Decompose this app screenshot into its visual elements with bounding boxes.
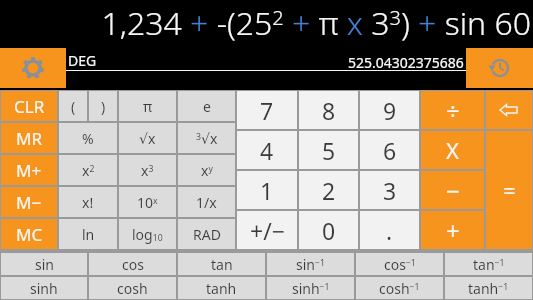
button[interactable]: 6: [359, 130, 420, 170]
staticText: π: [143, 97, 153, 116]
staticText: =: [503, 175, 516, 205]
staticText: ): [101, 97, 106, 116]
staticText: sinh: [30, 279, 58, 298]
button[interactable]: −: [420, 170, 485, 210]
button[interactable]: √x: [118, 122, 177, 154]
button[interactable]: tanh: [177, 276, 266, 300]
button[interactable]: MC: [0, 218, 58, 250]
staticText: 1,234 + -(252 + π x 33) + sin 60: [101, 1, 531, 45]
button[interactable]: π: [118, 90, 177, 122]
button[interactable]: cos−1: [355, 252, 444, 276]
staticText: DEG: [68, 51, 97, 70]
button[interactable]: 9: [359, 90, 420, 130]
staticText: tan−1: [473, 255, 505, 274]
button[interactable]: 3√x: [177, 122, 236, 154]
button[interactable]: x2: [58, 154, 118, 186]
button[interactable]: 1/x: [177, 186, 236, 218]
button[interactable]: sin−1: [266, 252, 355, 276]
staticText: 7: [260, 95, 274, 126]
button[interactable]: (: [58, 90, 88, 122]
staticText: cosh−1: [379, 279, 420, 298]
button[interactable]: [0, 48, 66, 88]
button[interactable]: 4: [236, 130, 298, 170]
staticText: +: [446, 214, 460, 247]
button[interactable]: 1: [236, 170, 298, 210]
button[interactable]: cosh: [88, 276, 177, 300]
button[interactable]: CLR: [0, 90, 58, 122]
staticText: 3: [383, 175, 397, 206]
staticText: cos: [122, 255, 144, 274]
button[interactable]: =: [485, 130, 533, 250]
staticText: ÷: [446, 94, 460, 127]
staticText: 8: [322, 95, 336, 126]
button[interactable]: sinh−1: [266, 276, 355, 300]
button[interactable]: 2: [298, 170, 359, 210]
button[interactable]: e: [177, 90, 236, 122]
button[interactable]: cos: [88, 252, 177, 276]
button[interactable]: 8: [298, 90, 359, 130]
button[interactable]: 10x: [118, 186, 177, 218]
staticText: 5: [322, 135, 336, 166]
button[interactable]: cosh−1: [355, 276, 444, 300]
button[interactable]: ÷: [420, 90, 485, 130]
staticText: 4: [260, 135, 274, 166]
staticText: x!: [82, 193, 94, 212]
staticText: MC: [16, 223, 43, 246]
staticText: tanh−1: [468, 279, 509, 298]
staticText: 10x: [137, 193, 158, 212]
staticText: sin: [35, 255, 54, 274]
button[interactable]: 7: [236, 90, 298, 130]
staticText: 2: [322, 175, 336, 206]
button[interactable]: .: [359, 210, 420, 250]
button[interactable]: tan−1: [444, 252, 533, 276]
staticText: 1: [260, 175, 274, 206]
staticText: M+: [16, 159, 42, 182]
staticText: tanh: [206, 279, 237, 298]
button[interactable]: ): [88, 90, 118, 122]
staticText: (: [71, 97, 76, 116]
button[interactable]: tanh−1: [444, 276, 533, 300]
button[interactable]: RAD: [177, 218, 236, 250]
button[interactable]: 5: [298, 130, 359, 170]
staticText: 9: [383, 95, 397, 126]
staticText: +/−: [250, 215, 285, 246]
button[interactable]: M−: [0, 186, 58, 218]
button[interactable]: sin: [0, 252, 88, 276]
button[interactable]: x3: [118, 154, 177, 186]
button[interactable]: xy: [177, 154, 236, 186]
button[interactable]: X: [420, 130, 485, 170]
button[interactable]: ln: [58, 218, 118, 250]
staticText: log10: [132, 225, 163, 244]
button[interactable]: log10: [118, 218, 177, 250]
staticText: %: [82, 129, 94, 148]
staticText: RAD: [193, 225, 221, 244]
staticText: ln: [82, 225, 95, 244]
button[interactable]: sinh: [0, 276, 88, 300]
staticText: x3: [141, 161, 154, 180]
button[interactable]: 3: [359, 170, 420, 210]
button[interactable]: +/−: [236, 210, 298, 250]
staticText: 3√x: [196, 129, 218, 148]
staticText: 1/x: [196, 193, 217, 212]
staticText: 6: [383, 135, 397, 166]
button[interactable]: tan: [177, 252, 266, 276]
button[interactable]: 0: [298, 210, 359, 250]
button[interactable]: M+: [0, 154, 58, 186]
staticText: xy: [201, 161, 213, 180]
button[interactable]: x!: [58, 186, 118, 218]
staticText: tan: [211, 255, 233, 274]
button[interactable]: MR: [0, 122, 58, 154]
staticText: √x: [139, 129, 156, 148]
staticText: e: [203, 97, 211, 116]
staticText: .: [386, 215, 393, 246]
staticText: 0: [322, 215, 336, 246]
button[interactable]: +: [420, 210, 485, 250]
staticText: 525.04302375686: [348, 53, 464, 72]
staticText: x2: [82, 161, 95, 180]
button[interactable]: [485, 90, 533, 130]
button[interactable]: [466, 48, 533, 88]
staticText: sin−1: [296, 255, 325, 274]
staticText: sinh−1: [292, 279, 330, 298]
staticText: MR: [16, 127, 42, 150]
button[interactable]: %: [58, 122, 118, 154]
